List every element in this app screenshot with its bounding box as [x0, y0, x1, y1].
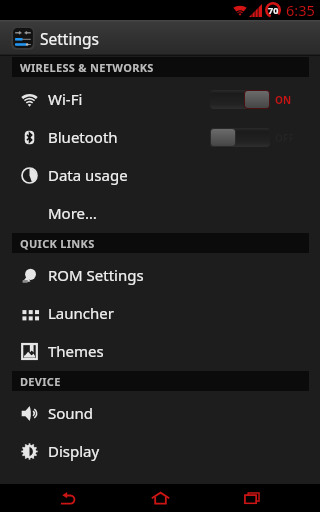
staticText: Bluetooth [48, 127, 118, 147]
button[interactable]: Launcher [0, 294, 320, 332]
button[interactable] [210, 128, 270, 147]
button[interactable]: ROM Settings [0, 256, 320, 294]
button[interactable]: Bluetooth [0, 118, 320, 156]
staticText: ON [275, 93, 292, 107]
button[interactable]: Themes [0, 332, 320, 370]
button[interactable]: Data usage [0, 156, 320, 194]
button[interactable]: Wi-Fi [0, 80, 320, 118]
staticText: 70 [268, 4, 279, 16]
button[interactable]: Sound [0, 394, 320, 432]
staticText: Wi-Fi [48, 89, 83, 109]
staticText: Themes [48, 341, 104, 361]
staticText: Settings [40, 28, 99, 49]
staticText: 6:35 [286, 0, 315, 20]
button[interactable]: Recent apps [236, 484, 268, 512]
button[interactable]: More… [0, 194, 320, 232]
button[interactable]: Display [0, 432, 320, 470]
staticText: WIRELESS & NETWORKS [20, 60, 154, 75]
staticText: QUICK LINKS [20, 236, 95, 251]
staticText: Launcher [48, 303, 114, 323]
staticText: Display [48, 441, 100, 461]
button[interactable] [210, 90, 270, 109]
staticText: Sound [48, 403, 94, 423]
button[interactable]: Home [144, 484, 176, 512]
staticText: Data usage [48, 165, 128, 185]
staticText: ROM Settings [48, 265, 144, 285]
staticText: DEVICE [20, 374, 61, 389]
staticText: More… [48, 203, 97, 223]
button[interactable]: Back [52, 484, 84, 512]
